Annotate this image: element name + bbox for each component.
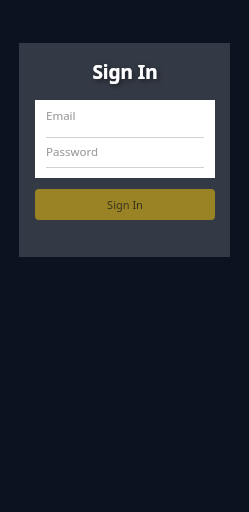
staticText: Sign In [92,59,158,85]
button[interactable]: Password [35,139,215,168]
button[interactable]: Email [35,100,215,138]
staticText: Sign In [107,197,143,212]
staticText: Email [46,108,76,124]
staticText: Password [46,144,99,160]
button[interactable]: Sign In [35,189,215,220]
